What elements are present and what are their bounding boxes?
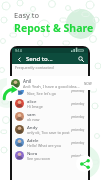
staticText: Adele: [27, 137, 39, 143]
button[interactable]: Adele: [12, 136, 88, 149]
button[interactable]: Nora: [12, 149, 88, 162]
staticText: yesterday: [71, 141, 85, 145]
button[interactable]: Search: [76, 54, 85, 63]
button[interactable]: Share: [76, 155, 93, 172]
staticText: alice: [27, 85, 37, 91]
staticText: ok now: [27, 117, 40, 122]
staticText: Nora: [27, 150, 38, 156]
button[interactable]: Andy: [12, 123, 88, 136]
button[interactable]: Repost: [1, 84, 19, 102]
staticText: Hello! What are you doing?: [27, 143, 71, 148]
button[interactable]: sam: [12, 110, 88, 123]
staticText: Frequently contacted: [15, 65, 54, 70]
staticText: sam: [27, 111, 36, 117]
staticText: yesterday: [71, 128, 85, 132]
staticText: alice: [27, 98, 37, 104]
button[interactable]: alice: [12, 97, 88, 110]
staticText: yesterday: [71, 154, 85, 158]
button[interactable]: Back: [15, 55, 23, 63]
staticText: yesterday: [71, 102, 85, 106]
staticText: See you soon: [27, 156, 50, 161]
button[interactable]: Anil: [7, 76, 96, 90]
staticText: yesterday: [71, 89, 85, 93]
staticText: Hi Image: [27, 104, 43, 109]
staticText: Anil: [23, 78, 32, 84]
staticText: Anil: Yeah, I have a good idea...: [23, 84, 80, 89]
button[interactable]: alice: [12, 84, 88, 97]
staticText: Send to...: [26, 55, 53, 63]
staticText: Andy: [27, 124, 38, 130]
staticText: only ok, Too save to post: [27, 130, 70, 135]
staticText: yesterday: [71, 115, 85, 119]
staticText: Repost & Share: [14, 21, 94, 35]
staticText: 9:14: [15, 48, 22, 53]
staticText: Easy to: [14, 10, 39, 20]
staticText: NOW: [84, 82, 92, 86]
staticText: Nice, See let's go: [27, 91, 57, 96]
